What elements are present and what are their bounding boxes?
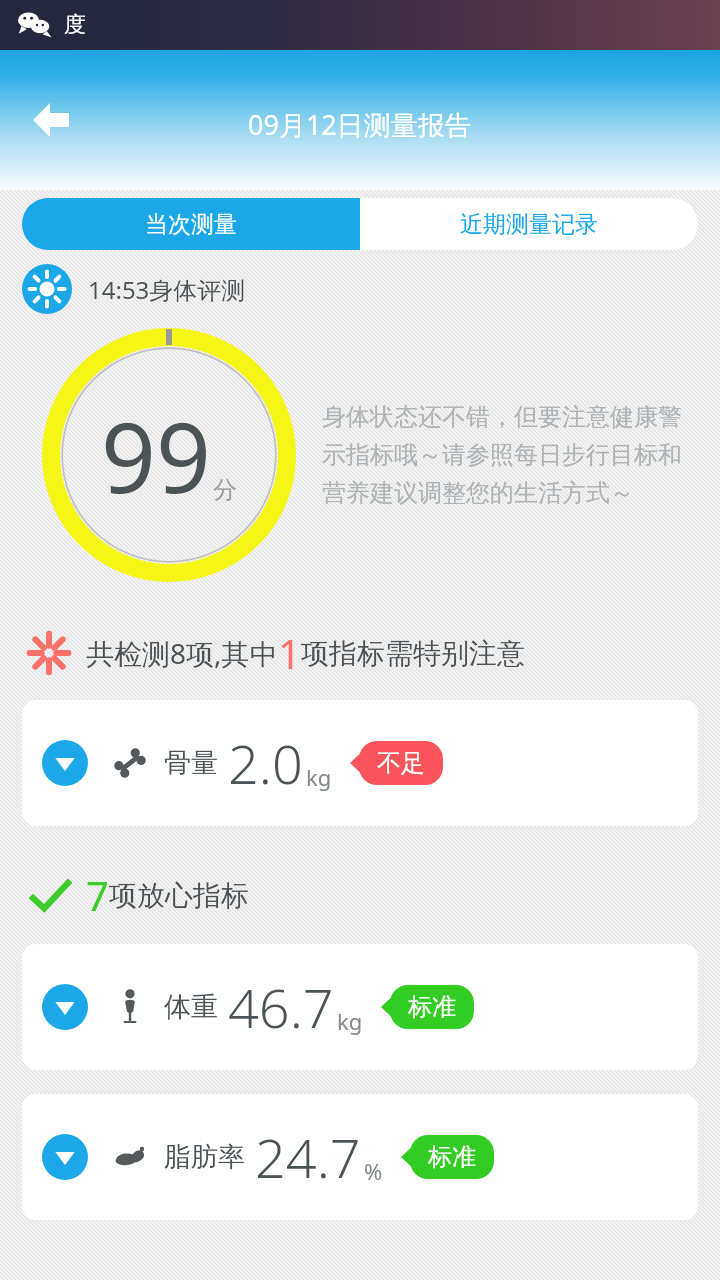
staticText: 标准 <box>408 992 456 1022</box>
staticText: kg <box>337 1006 363 1036</box>
button[interactable]: 体重 <box>22 944 698 1070</box>
button[interactable]: 近期测量记录 <box>360 198 698 250</box>
staticText: 骨量 <box>164 746 218 780</box>
staticText: 24.7 <box>255 1120 361 1194</box>
staticText: 项放心指标 <box>109 878 249 913</box>
staticText: 2.0 <box>228 726 303 800</box>
button[interactable]: Back <box>22 91 80 149</box>
staticText: 共检测8项,其中 <box>86 634 278 672</box>
staticText: 体重 <box>164 990 218 1024</box>
staticText: 99 <box>101 390 211 521</box>
staticText: kg <box>306 762 332 792</box>
staticText: 46.7 <box>228 970 334 1044</box>
staticText: 项指标需特别注意 <box>301 636 525 671</box>
staticText: 不足 <box>377 748 425 778</box>
staticText: 14:53身体评测 <box>88 273 246 306</box>
button[interactable]: 当次测量 <box>22 198 360 250</box>
staticText: 1 <box>278 626 301 680</box>
button[interactable]: 脂肪率 <box>22 1094 698 1220</box>
staticText: 脂肪率 <box>164 1140 245 1174</box>
button[interactable]: 骨量 <box>22 700 698 826</box>
staticText: 身体状态还不错，但要注意健康警示指标哦～请参照每日步行目标和营养建议调整您的生活… <box>322 402 702 509</box>
staticText: 当次测量 <box>145 210 237 239</box>
staticText: % <box>364 1156 383 1186</box>
staticText: 7 <box>86 868 109 922</box>
staticText: 度 <box>64 11 86 39</box>
staticText: 分 <box>213 475 237 505</box>
staticText: 09月12日测量报告 <box>248 106 472 143</box>
staticText: 近期测量记录 <box>460 210 598 239</box>
staticText: 标准 <box>428 1142 476 1172</box>
